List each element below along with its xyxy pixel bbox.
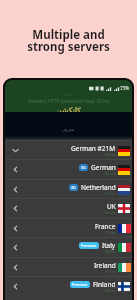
button[interactable]: Expand (5, 179, 132, 198)
staticText: 77 ms (105, 269, 116, 274)
staticText: Multiple and strong servers (0, 27, 137, 55)
button[interactable]: Expand (5, 198, 132, 217)
button[interactable]: Expand (5, 159, 132, 178)
other: Expand (12, 264, 19, 271)
other: Expand (12, 225, 19, 232)
staticText: 84 ms (105, 288, 116, 293)
button[interactable]: Collapse (5, 140, 132, 159)
staticText: 71 ms (105, 230, 116, 235)
other: Collapse (12, 147, 19, 154)
staticText: 73% (120, 85, 129, 91)
button[interactable]: Expand (5, 276, 132, 295)
staticText: 4G (71, 185, 76, 190)
button[interactable]: Expand (5, 218, 132, 237)
staticText: سرور (5, 126, 132, 132)
staticText: Sessions: HTTP connection load: 32 ms (5, 98, 132, 104)
button[interactable]: Expand (5, 237, 132, 256)
staticText: 42 ms (105, 171, 116, 176)
staticText: German #21M (71, 144, 116, 153)
staticText: German (91, 163, 116, 172)
staticText: 51 ms (105, 191, 116, 196)
staticText: Finland (93, 280, 116, 289)
staticText: 65 ms (105, 210, 116, 215)
other: Expand (12, 244, 19, 251)
staticText: Premium (81, 243, 97, 248)
other: Expand (12, 166, 19, 173)
staticText: 5G (81, 165, 86, 170)
staticText: کانکشن (5, 106, 132, 115)
staticText: Ireland (94, 261, 116, 270)
button[interactable]: Expand (5, 257, 132, 276)
staticText: Premium (72, 282, 88, 287)
staticText: UK (107, 202, 116, 211)
other: Expand (12, 283, 19, 290)
staticText: Italy (102, 241, 116, 250)
staticText: Netherland (81, 183, 116, 192)
other: Expand (12, 205, 19, 212)
staticText: 64 ms (105, 152, 116, 157)
staticText: France (95, 222, 116, 231)
staticText: 80 ms (105, 249, 116, 254)
other: Expand (12, 186, 19, 193)
